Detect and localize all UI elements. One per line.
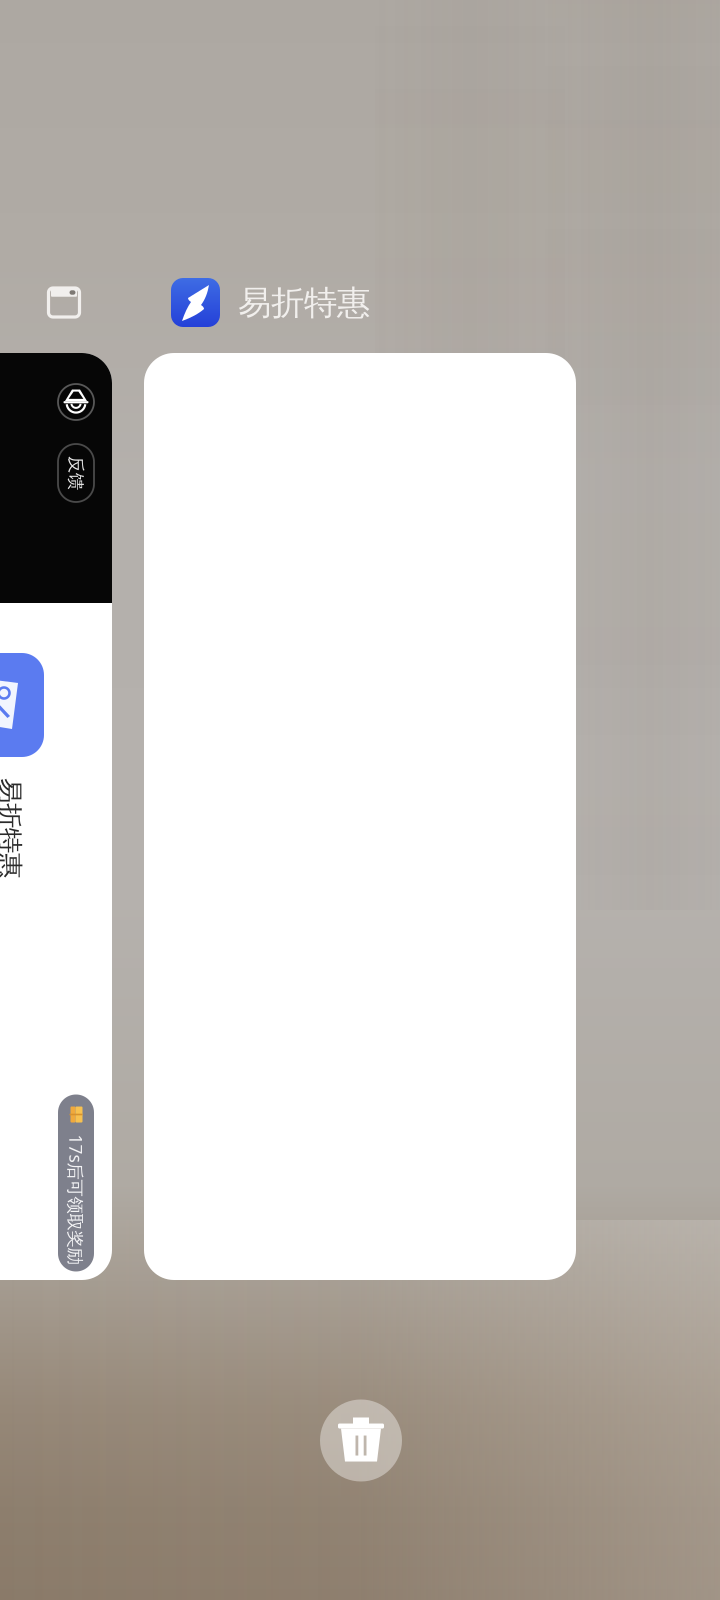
- staticText: 易折特惠: [0, 812, 60, 843]
- button[interactable]: Split screen: [32, 272, 96, 332]
- staticText: 17s后可领取奖励: [11, 1188, 141, 1211]
- button[interactable]: Close all apps: [320, 1399, 402, 1481]
- staticText: 易折特惠: [238, 282, 370, 323]
- staticText: 反馈: [59, 462, 93, 484]
